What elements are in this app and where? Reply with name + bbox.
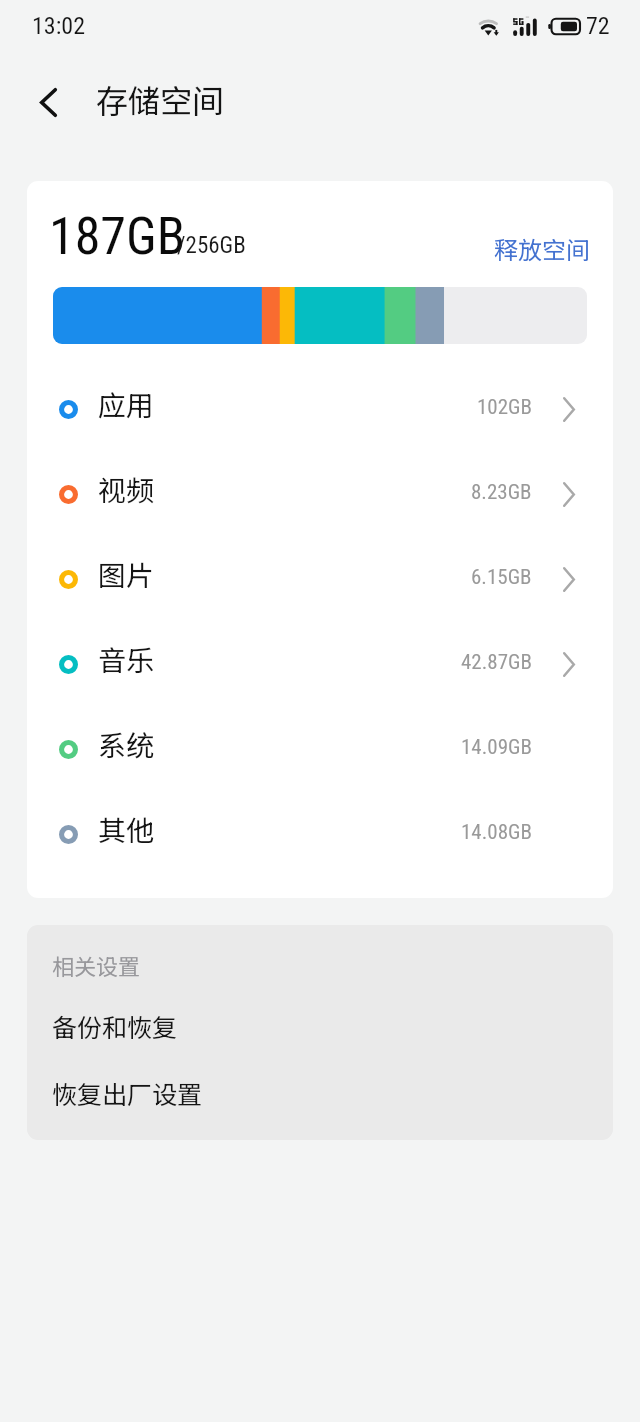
button[interactable]: 应用 (27, 367, 613, 452)
staticText: 72 (586, 12, 610, 40)
staticText: 备份和恢复 (52, 1008, 178, 1044)
staticText: 42.87GB (461, 650, 532, 675)
staticText: 187GB (49, 206, 186, 267)
staticText: 其他 (98, 809, 155, 850)
staticText: 14.09GB (461, 735, 532, 760)
staticText: 应用 (98, 384, 155, 425)
button[interactable]: 其他 (27, 792, 613, 877)
staticText: 恢复出厂设置 (52, 1075, 203, 1111)
button[interactable]: 图片 (27, 537, 613, 622)
staticText: 系统 (98, 724, 155, 765)
staticText: 相关设置 (52, 949, 141, 981)
button[interactable]: 音乐 (27, 622, 613, 707)
staticText: 13:02 (32, 12, 85, 40)
button[interactable]: 视频 (27, 452, 613, 537)
staticText: 102GB (477, 395, 532, 420)
staticText: 音乐 (98, 639, 155, 680)
staticText: 图片 (98, 554, 155, 595)
staticText: 存储空间 (96, 76, 225, 122)
staticText: 视频 (98, 469, 155, 510)
staticText: 14.08GB (461, 820, 532, 845)
staticText: 6.15GB (471, 565, 532, 590)
button[interactable]: 备份和恢复 (27, 993, 613, 1059)
staticText: 8.23GB (471, 480, 532, 505)
button[interactable]: 释放空间 (494, 231, 590, 267)
button[interactable]: Back (22, 76, 74, 128)
button[interactable]: 系统 (27, 707, 613, 792)
staticText: 释放空间 (494, 231, 590, 266)
button[interactable]: 恢复出厂设置 (27, 1059, 613, 1127)
staticText: /256GB (177, 232, 246, 259)
